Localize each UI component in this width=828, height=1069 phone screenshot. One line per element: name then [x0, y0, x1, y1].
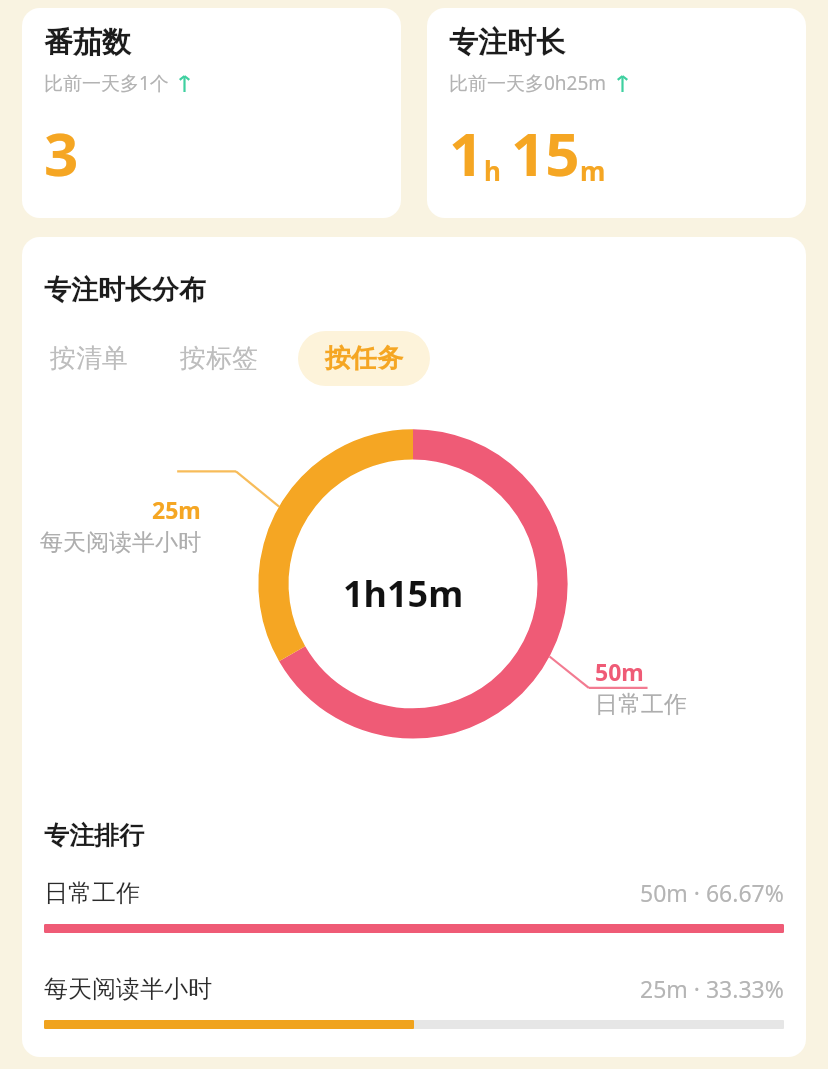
staticText: m — [580, 153, 606, 188]
staticText: 比前一天多0h25m — [449, 70, 607, 96]
staticText: 番茄数 — [44, 24, 131, 61]
button[interactable]: 日常工作 — [22, 877, 806, 933]
staticText: 专注排行 — [44, 820, 144, 851]
staticText: 专注时长 — [449, 24, 565, 61]
button[interactable]: 番茄数 — [22, 8, 401, 218]
staticText: 每天阅读半小时 — [44, 974, 212, 1004]
button[interactable]: 每天阅读半小时 — [22, 973, 806, 1029]
staticText: 每天阅读半小时 — [40, 528, 201, 557]
staticText: 日常工作 — [44, 878, 140, 908]
staticText: 比前一天多1个 — [44, 70, 169, 96]
button[interactable]: 按任务 — [298, 331, 430, 386]
staticText: 按标签 — [180, 342, 258, 375]
staticText: 按任务 — [325, 342, 403, 375]
button[interactable]: 专注时长 — [427, 8, 806, 218]
staticText: 25m — [152, 494, 201, 525]
staticText: 50m — [595, 656, 644, 687]
staticText: 3 — [44, 112, 79, 194]
staticText: 日常工作 — [595, 690, 687, 719]
staticText: 1 — [449, 112, 484, 194]
staticText: h — [484, 153, 501, 188]
staticText: 25m · 33.33% — [640, 973, 784, 1004]
button[interactable]: 按标签 — [174, 331, 264, 386]
button[interactable]: 按清单 — [44, 331, 134, 386]
staticText: 15 — [511, 112, 580, 194]
staticText: 50m · 66.67% — [640, 877, 784, 908]
staticText: 专注时长分布 — [44, 273, 206, 307]
staticText: 按清单 — [50, 342, 128, 375]
staticText: 1h15m — [343, 569, 464, 618]
